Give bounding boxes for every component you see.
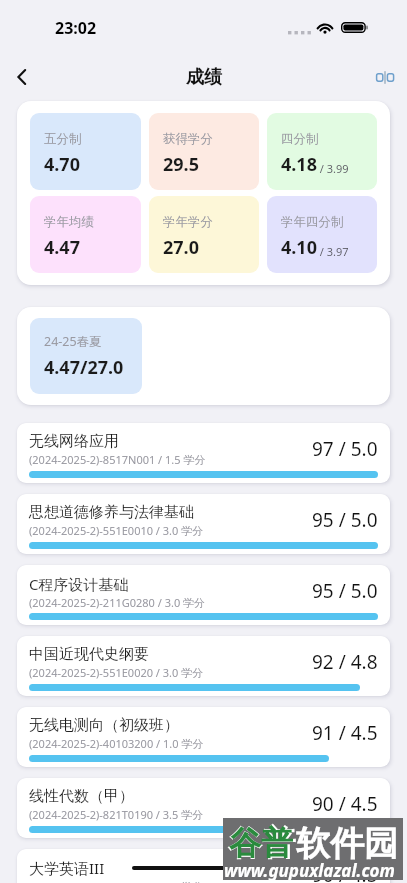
staticText: / 3.97 — [317, 244, 349, 259]
staticText: 学年四分制 — [281, 214, 344, 230]
staticText: 97 / 5.0 — [312, 436, 378, 462]
button[interactable]: 线性代数（甲） — [17, 778, 390, 838]
button[interactable]: Compare — [369, 61, 401, 93]
staticText: / 3.99 — [317, 161, 349, 176]
button[interactable]: 无线网络应用 — [17, 423, 390, 483]
staticText: C程序设计基础 — [29, 574, 129, 594]
staticText: 95 / 5.0 — [312, 507, 378, 533]
staticText: (2024-2025-2)-8517N001 / 1.5 学分 — [29, 452, 206, 467]
staticText: 95 / 5.0 — [312, 578, 378, 604]
button[interactable]: 四分制 — [267, 113, 377, 190]
button[interactable]: Back — [0, 55, 44, 99]
staticText: 谷普 — [229, 823, 293, 863]
staticText: 谷普软件园 — [228, 822, 398, 865]
staticText: 90 / 4.5 — [312, 791, 378, 817]
button[interactable]: 思想道德修养与法律基础 — [17, 494, 390, 554]
staticText: 29.5 — [163, 152, 199, 177]
staticText: (2024-2025-2)-851E0000 / 3.0 学分 — [29, 879, 204, 883]
staticText: 91 / 4.5 — [312, 720, 378, 746]
button[interactable]: 无线电测向（初级班） — [17, 707, 390, 767]
staticText: 92 / 4.8 — [312, 649, 378, 675]
staticText: 90 / 4.5 — [312, 862, 378, 883]
staticText: 获得学分 — [163, 131, 213, 147]
staticText: (2024-2025-2)-40103200 / 1.0 学分 — [29, 736, 204, 751]
staticText: (2024-2025-2)-551E0020 / 3.0 学分 — [29, 665, 204, 680]
staticText: (2024-2025-2)-551E0010 / 3.0 学分 — [29, 523, 204, 538]
staticText: 4.10 — [281, 235, 317, 260]
staticText: 24-25春夏 — [44, 333, 102, 350]
staticText: 23:02 — [55, 17, 97, 39]
staticText: 4.47/27.0 — [44, 355, 124, 380]
button[interactable]: 学年学分 — [149, 196, 259, 273]
staticText: 五分制 — [44, 131, 82, 147]
staticText: 无线网络应用 — [29, 432, 119, 451]
button[interactable]: C程序设计基础 — [17, 565, 390, 625]
staticText: 27.0 — [163, 235, 199, 260]
staticText: 思想道德修养与法律基础 — [29, 503, 194, 522]
staticText: 大学英语III — [29, 858, 105, 878]
staticText: 4.47 — [44, 235, 80, 260]
staticText: www.gupuxlazal.com — [224, 859, 395, 882]
staticText: (2024-2025-2)-821T0190 / 3.5 学分 — [29, 807, 204, 822]
staticText: 线性代数（甲） — [29, 787, 134, 806]
button[interactable]: 五分制 — [30, 113, 141, 190]
staticText: 学年均绩 — [44, 214, 94, 230]
staticText: 成绩 — [186, 66, 222, 89]
button[interactable]: 24-25春夏 — [30, 318, 142, 394]
button[interactable]: 获得学分 — [149, 113, 259, 190]
staticText: 4.18 — [281, 152, 317, 177]
button[interactable]: 中国近现代史纲要 — [17, 636, 390, 696]
staticText: (2024-2025-2)-211G0280 / 3.0 学分 — [29, 595, 206, 610]
staticText: 无线电测向（初级班） — [29, 716, 179, 735]
staticText: 学年学分 — [163, 214, 213, 230]
staticText: 中国近现代史纲要 — [29, 645, 149, 664]
button[interactable]: 学年四分制 — [267, 196, 377, 273]
button[interactable]: 学年均绩 — [30, 196, 141, 273]
staticText: 四分制 — [281, 131, 319, 147]
staticText: 4.70 — [44, 152, 80, 177]
button[interactable]: 大学英语III — [17, 849, 390, 883]
